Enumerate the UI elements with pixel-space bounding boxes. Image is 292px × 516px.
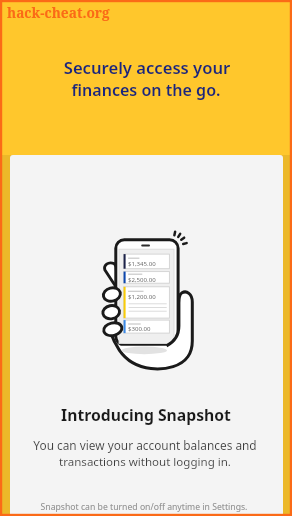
staticText: finances on the go.: [0, 79, 292, 101]
button[interactable]: Dismiss: [0, 0, 292, 155]
staticText: $2,500.00: [128, 275, 156, 283]
staticText: $300.00: [128, 324, 151, 332]
staticText: Introducing Snapshot: [0, 404, 292, 425]
staticText: $1,345.00: [128, 259, 156, 267]
staticText: transactions without logging in.: [0, 454, 291, 470]
staticText: $1,200.00: [128, 292, 156, 300]
staticText: Securely access your: [1, 56, 292, 79]
staticText: You can view your account balances and: [0, 437, 291, 453]
staticText: hack-cheat.org: [7, 3, 110, 22]
staticText: Snapshot can be turned on/off anytime in…: [0, 501, 290, 513]
